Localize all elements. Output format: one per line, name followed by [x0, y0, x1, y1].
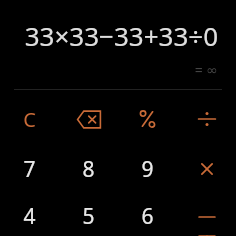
button[interactable]: 7 [0, 147, 59, 191]
button[interactable]: Percent [118, 97, 177, 141]
staticText: 33×33−33+33÷0 [24, 18, 218, 53]
button[interactable]: 4 [0, 197, 59, 236]
button[interactable]: Multiply [177, 147, 236, 191]
button[interactable]: 6 [118, 197, 177, 236]
button[interactable]: 9 [118, 147, 177, 191]
staticText: 4 [23, 202, 36, 231]
staticText: 9 [141, 155, 154, 184]
button[interactable]: Minus [177, 197, 236, 236]
button[interactable]: Backspace [59, 97, 118, 141]
staticText: 8 [82, 155, 95, 184]
staticText: 5 [82, 202, 95, 231]
button[interactable]: Divide [177, 97, 236, 141]
staticText: = ∞ [194, 60, 218, 79]
staticText: C [23, 106, 36, 133]
staticText: 6 [141, 202, 154, 231]
button[interactable]: 8 [59, 147, 118, 191]
staticText: 7 [23, 155, 36, 184]
button[interactable]: C [0, 97, 59, 141]
button[interactable]: 5 [59, 197, 118, 236]
